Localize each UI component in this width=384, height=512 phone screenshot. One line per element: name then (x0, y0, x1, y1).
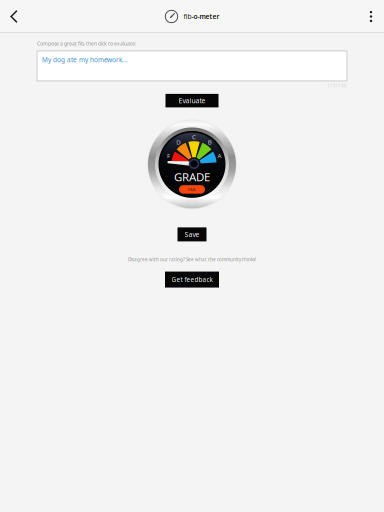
staticText: Evaluate (178, 96, 205, 105)
button[interactable]: Back (0, 0, 28, 33)
staticText: 115/140 (327, 83, 347, 89)
staticText: Save (184, 230, 199, 239)
staticText: FAIL (188, 186, 196, 192)
staticText: fib-o-meter (183, 12, 219, 21)
button[interactable]: Evaluate (165, 94, 218, 107)
staticText: D (176, 138, 180, 146)
staticText: Disagree with our rating? See what the c… (128, 256, 256, 263)
staticText: Compose a great fib, then click to evalu… (37, 40, 136, 47)
button[interactable]: More options (358, 0, 384, 33)
staticText: GRADE (174, 169, 210, 185)
staticText: A (217, 151, 221, 160)
button[interactable]: Save (177, 227, 206, 241)
staticText: My dog ate my homework... (42, 55, 128, 64)
staticText: Get feedback (171, 275, 212, 284)
staticText: B (208, 138, 212, 146)
staticText: F (167, 151, 170, 160)
staticText: C (192, 133, 196, 141)
button[interactable]: Get feedback (165, 272, 219, 288)
